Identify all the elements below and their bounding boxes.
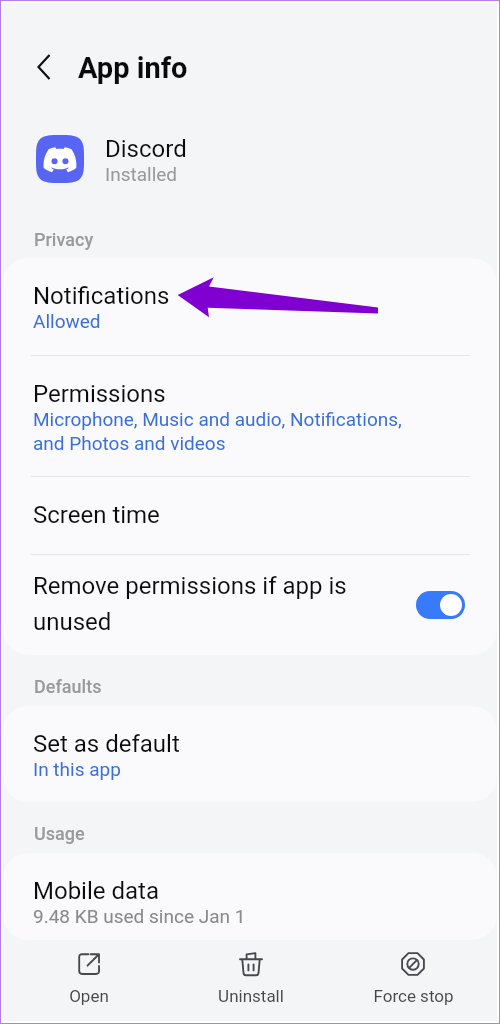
staticText: Remove permissions if app is unused bbox=[33, 572, 367, 636]
staticText: In this app bbox=[33, 758, 121, 780]
staticText: Allowed bbox=[33, 310, 101, 332]
staticText: Uninstall bbox=[218, 986, 284, 1006]
staticText: Open bbox=[69, 986, 109, 1006]
button[interactable]: Set as default bbox=[3, 706, 497, 802]
staticText: Set as default bbox=[33, 730, 180, 758]
staticText: Usage bbox=[34, 823, 85, 844]
staticText: 9.48 KB used since Jan 1 bbox=[33, 905, 246, 927]
button[interactable]: Force stop bbox=[355, 939, 471, 1021]
button[interactable]: Uninstall bbox=[193, 939, 309, 1021]
button[interactable]: Toggle bbox=[416, 591, 465, 619]
button[interactable]: Notifications bbox=[3, 258, 497, 355]
staticText: App info bbox=[78, 51, 188, 85]
staticText: Permissions bbox=[33, 380, 166, 408]
button[interactable]: Mobile data bbox=[3, 853, 497, 940]
staticText: Notifications bbox=[33, 282, 170, 310]
staticText: Screen time bbox=[33, 501, 160, 529]
staticText: Force stop bbox=[373, 986, 454, 1006]
button[interactable]: Screen time bbox=[3, 477, 497, 554]
staticText: Discord bbox=[105, 135, 187, 163]
staticText: Installed bbox=[105, 163, 178, 185]
staticText: Defaults bbox=[34, 676, 102, 697]
button[interactable]: Open bbox=[31, 939, 147, 1021]
button[interactable]: Remove permissions if app is unused bbox=[3, 555, 497, 655]
staticText: Mobile data bbox=[33, 877, 159, 905]
button[interactable]: Navigate up bbox=[22, 45, 66, 89]
staticText: Privacy bbox=[34, 229, 94, 250]
staticText: Microphone, Music and audio, Notificatio… bbox=[33, 408, 437, 455]
button[interactable]: Permissions bbox=[3, 356, 497, 476]
